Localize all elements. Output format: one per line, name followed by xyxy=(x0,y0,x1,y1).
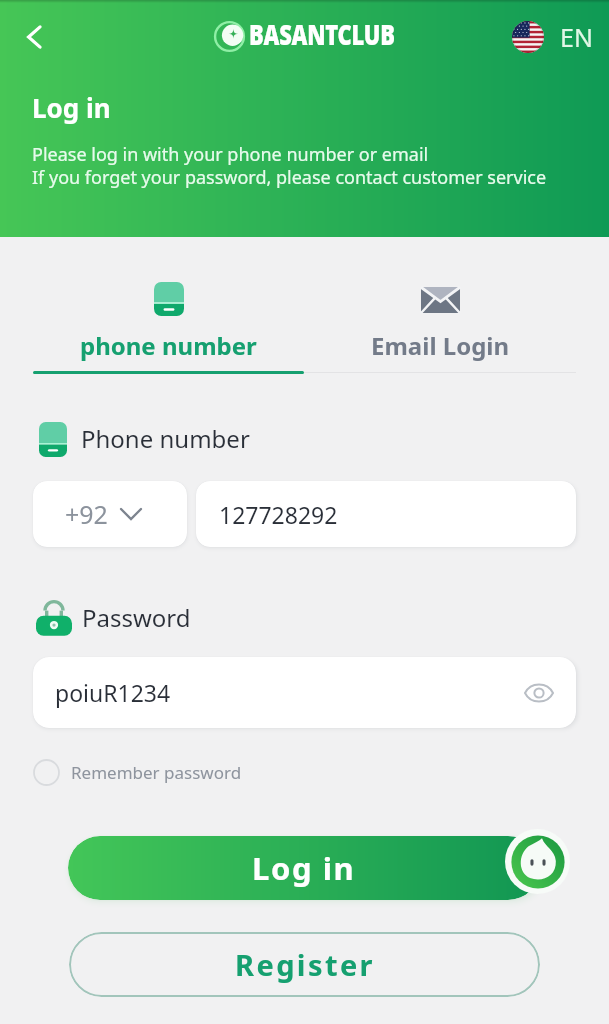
button[interactable]: Show password xyxy=(519,673,559,713)
button[interactable]: Email Login xyxy=(304,266,576,371)
staticText: Remember password xyxy=(71,761,242,784)
staticText: Log in xyxy=(32,90,111,125)
button[interactable]: Log in xyxy=(68,836,540,900)
staticText: +92 xyxy=(65,497,108,531)
button[interactable]: poiuR1234 xyxy=(33,657,576,728)
button[interactable]: Remember password xyxy=(33,757,242,787)
button[interactable]: 127728292 xyxy=(196,481,576,547)
staticText: Password xyxy=(82,601,191,634)
staticText: Phone number xyxy=(81,422,250,455)
button[interactable]: phone number xyxy=(33,266,304,371)
staticText: Email Login xyxy=(371,329,510,362)
staticText: Register xyxy=(235,945,375,984)
staticText: poiuR1234 xyxy=(55,677,171,708)
staticText: If you forget your password, please cont… xyxy=(32,165,547,190)
staticText: 127728292 xyxy=(219,499,338,530)
button[interactable]: Register xyxy=(69,932,540,997)
staticText: Log in xyxy=(252,847,356,889)
button[interactable]: Language EN xyxy=(512,19,593,55)
button[interactable]: +92 xyxy=(33,481,187,547)
staticText: phone number xyxy=(80,329,257,362)
staticText: BASANTCLUB xyxy=(249,14,395,46)
button[interactable]: Back xyxy=(12,14,58,60)
button[interactable]: Customer service xyxy=(505,829,570,894)
staticText: EN xyxy=(560,20,593,54)
staticText: Please log in with your phone number or … xyxy=(32,142,429,167)
